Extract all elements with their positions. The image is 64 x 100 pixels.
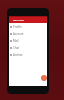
- button[interactable]: Dark Mode: [9, 17, 47, 23]
- staticText: Mail: [13, 39, 19, 43]
- staticText: Profile: [13, 25, 22, 29]
- button[interactable]: Chat: [9, 44, 47, 51]
- staticText: Chat: [13, 46, 20, 50]
- button[interactable]: Account: [9, 30, 47, 37]
- button[interactable]: Archive: [9, 51, 47, 58]
- button[interactable]: Mail: [9, 37, 47, 44]
- button[interactable]: Add: [41, 75, 47, 81]
- staticText: Archive: [13, 53, 23, 57]
- button[interactable]: Profile: [9, 23, 47, 30]
- staticText: Dark Mode: [13, 19, 24, 22]
- staticText: Account: [13, 32, 24, 36]
